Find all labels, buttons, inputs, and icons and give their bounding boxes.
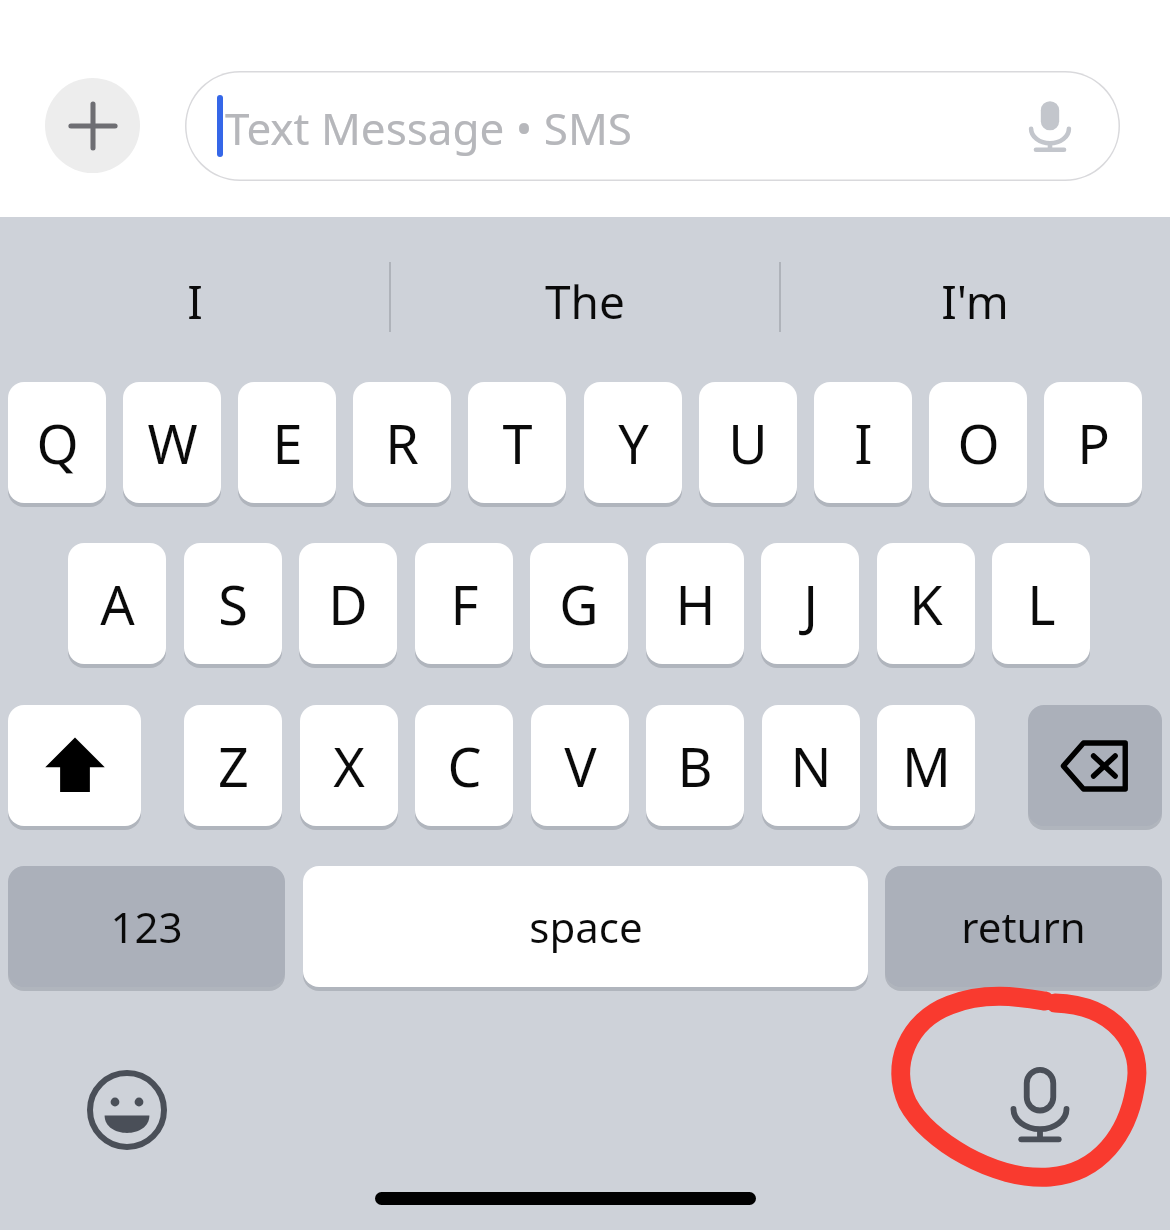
button[interactable]: return <box>885 866 1162 987</box>
staticText: G <box>559 567 599 641</box>
button[interactable]: J <box>761 543 859 664</box>
button[interactable]: X <box>300 705 398 826</box>
button[interactable]: Shift <box>8 705 141 826</box>
button[interactable]: L <box>992 543 1090 664</box>
button[interactable]: S <box>184 543 282 664</box>
staticText: T <box>502 406 533 480</box>
button[interactable]: H <box>646 543 744 664</box>
staticText: F <box>450 567 479 641</box>
button[interactable]: W <box>123 382 221 503</box>
button[interactable]: K <box>877 543 975 664</box>
staticText: Text Message • SMS <box>225 98 632 158</box>
staticText: E <box>272 406 303 480</box>
staticText: P <box>1077 406 1110 480</box>
button[interactable]: P <box>1044 382 1142 503</box>
staticText: Z <box>218 729 249 803</box>
button[interactable]: I'm <box>780 217 1170 382</box>
staticText: I <box>187 270 203 333</box>
staticText: K <box>909 567 943 641</box>
button[interactable]: Z <box>184 705 282 826</box>
button[interactable]: I <box>0 217 390 382</box>
button[interactable]: C <box>415 705 513 826</box>
staticText: Y <box>618 406 649 480</box>
staticText: J <box>803 567 818 641</box>
staticText: 123 <box>110 898 183 955</box>
staticText: N <box>790 729 832 803</box>
button[interactable]: Dictation <box>988 1053 1092 1157</box>
button[interactable]: 123 <box>8 866 285 987</box>
staticText: M <box>902 729 951 803</box>
staticText: S <box>218 567 248 641</box>
button[interactable]: M <box>877 705 975 826</box>
button[interactable]: T <box>468 382 566 503</box>
staticText: O <box>957 406 1000 480</box>
button[interactable]: Q <box>8 382 106 503</box>
staticText: A <box>100 567 135 641</box>
button[interactable]: G <box>530 543 628 664</box>
button[interactable]: B <box>646 705 744 826</box>
staticText: U <box>728 406 768 480</box>
button[interactable]: D <box>299 543 397 664</box>
staticText: Q <box>36 406 79 480</box>
staticText: L <box>1027 567 1056 641</box>
button[interactable]: O <box>929 382 1027 503</box>
button[interactable]: Emoji <box>75 1058 179 1162</box>
staticText: return <box>961 898 1086 955</box>
button[interactable]: Add attachment <box>45 78 140 173</box>
button[interactable]: space <box>303 866 868 987</box>
staticText: I <box>854 406 873 480</box>
button[interactable]: Text Message • SMS <box>185 71 1120 181</box>
button[interactable]: R <box>353 382 451 503</box>
staticText: H <box>675 567 716 641</box>
staticText: B <box>677 729 713 803</box>
button[interactable]: The <box>390 217 780 382</box>
button[interactable]: Delete <box>1028 705 1162 826</box>
staticText: V <box>564 729 597 803</box>
button[interactable]: A <box>68 543 166 664</box>
button[interactable]: Dictate message <box>1018 94 1082 158</box>
staticText: The <box>545 270 625 333</box>
staticText: W <box>147 406 198 480</box>
button[interactable]: U <box>699 382 797 503</box>
staticText: I'm <box>941 270 1009 333</box>
staticText: X <box>333 729 365 803</box>
staticText: D <box>328 567 368 641</box>
staticText: R <box>385 406 419 480</box>
button[interactable]: N <box>762 705 860 826</box>
button[interactable]: F <box>415 543 513 664</box>
staticText: C <box>447 729 482 803</box>
button[interactable]: Y <box>584 382 682 503</box>
staticText: space <box>529 898 643 955</box>
button[interactable]: E <box>238 382 336 503</box>
button[interactable]: V <box>531 705 629 826</box>
button[interactable]: I <box>814 382 912 503</box>
